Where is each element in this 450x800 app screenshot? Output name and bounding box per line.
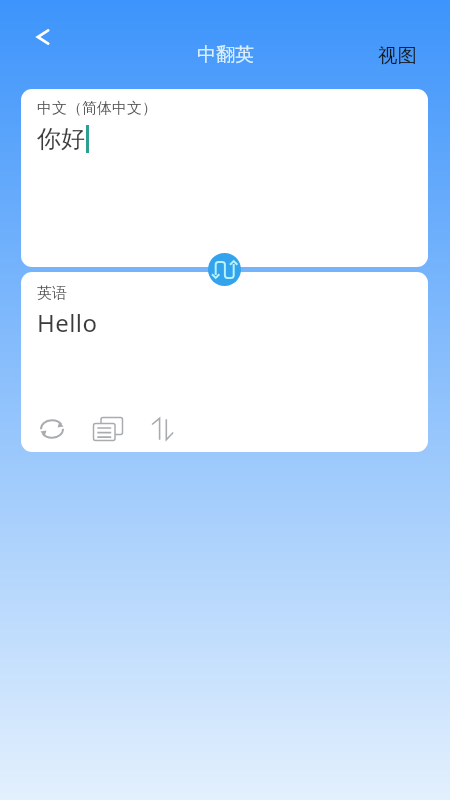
button[interactable]: Back	[22, 17, 62, 57]
button[interactable]: Copy	[90, 411, 126, 447]
button[interactable]: Swap languages	[208, 253, 241, 286]
button[interactable]: 视图	[372, 37, 423, 74]
staticText: 英语	[37, 284, 67, 303]
staticText: 视图	[378, 43, 417, 68]
button[interactable]: Refresh	[34, 411, 70, 447]
button[interactable]: Transfer	[146, 411, 182, 447]
staticText: 中翻英	[197, 43, 254, 67]
button[interactable]: 英语	[21, 272, 428, 452]
button[interactable]: 中文（简体中文）	[21, 89, 428, 267]
staticText: 中文（简体中文）	[37, 99, 157, 118]
staticText: 你好	[37, 124, 85, 154]
staticText: Hello	[37, 306, 98, 339]
